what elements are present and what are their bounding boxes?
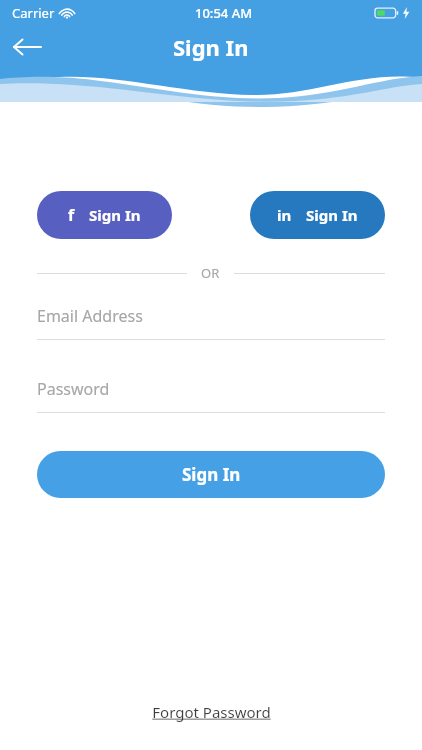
button[interactable]: in [250, 191, 385, 239]
staticText: Sign In [89, 205, 141, 225]
staticText: Sign In [173, 32, 249, 62]
button[interactable]: Password [37, 374, 385, 413]
staticText: f [68, 204, 75, 226]
button[interactable]: Email Address [37, 301, 385, 340]
staticText: Carrier [12, 4, 55, 22]
staticText: Password [37, 378, 110, 400]
button[interactable]: f [37, 191, 172, 239]
button[interactable]: Sign In [37, 451, 385, 498]
staticText: 10:54 AM [195, 4, 253, 22]
staticText: in [277, 205, 292, 225]
button[interactable]: Forgot Password [142, 696, 281, 728]
staticText: Forgot Password [152, 702, 271, 722]
staticText: Email Address [37, 305, 143, 327]
staticText: Sign In [306, 205, 358, 225]
button[interactable]: Back [6, 26, 48, 68]
staticText: Sign In [182, 463, 241, 486]
staticText: OR [201, 264, 220, 282]
